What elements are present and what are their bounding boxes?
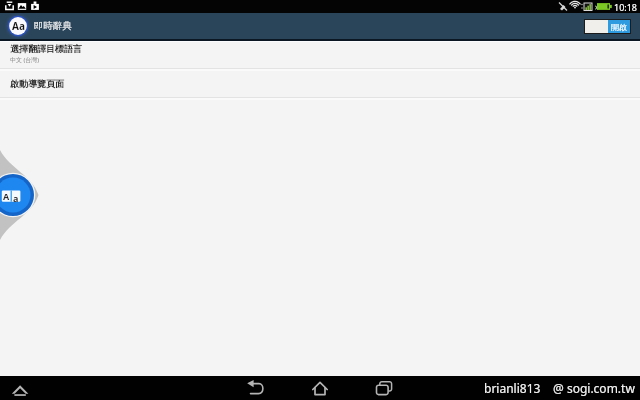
staticText: 即時辭典: [34, 20, 72, 32]
staticText: »: [595, 1, 600, 12]
button[interactable]: Instant dictionary: [0, 175, 34, 215]
button[interactable]: Recent apps: [368, 376, 400, 400]
button[interactable]: 開啟: [585, 20, 630, 33]
button[interactable]: Home: [304, 376, 336, 400]
staticText: A: [3, 190, 10, 202]
button[interactable]: 啟動導覽頁面: [0, 71, 640, 97]
staticText: 開啟: [611, 22, 627, 32]
staticText: 10:18: [614, 1, 638, 13]
staticText: a: [13, 192, 19, 204]
button[interactable]: App icon: [8, 16, 28, 36]
staticText: brianli813: [484, 380, 541, 396]
staticText: @ sogi.com.tw: [553, 380, 635, 396]
button[interactable]: 選擇翻譯目標語言: [0, 42, 640, 68]
staticText: Aa: [12, 19, 25, 33]
button[interactable]: Back: [240, 376, 272, 400]
staticText: 啟動導覽頁面: [10, 78, 64, 89]
staticText: 選擇翻譯目標語言: [10, 43, 82, 54]
staticText: 中文 (台灣): [10, 56, 40, 64]
button[interactable]: Expand: [4, 376, 37, 400]
